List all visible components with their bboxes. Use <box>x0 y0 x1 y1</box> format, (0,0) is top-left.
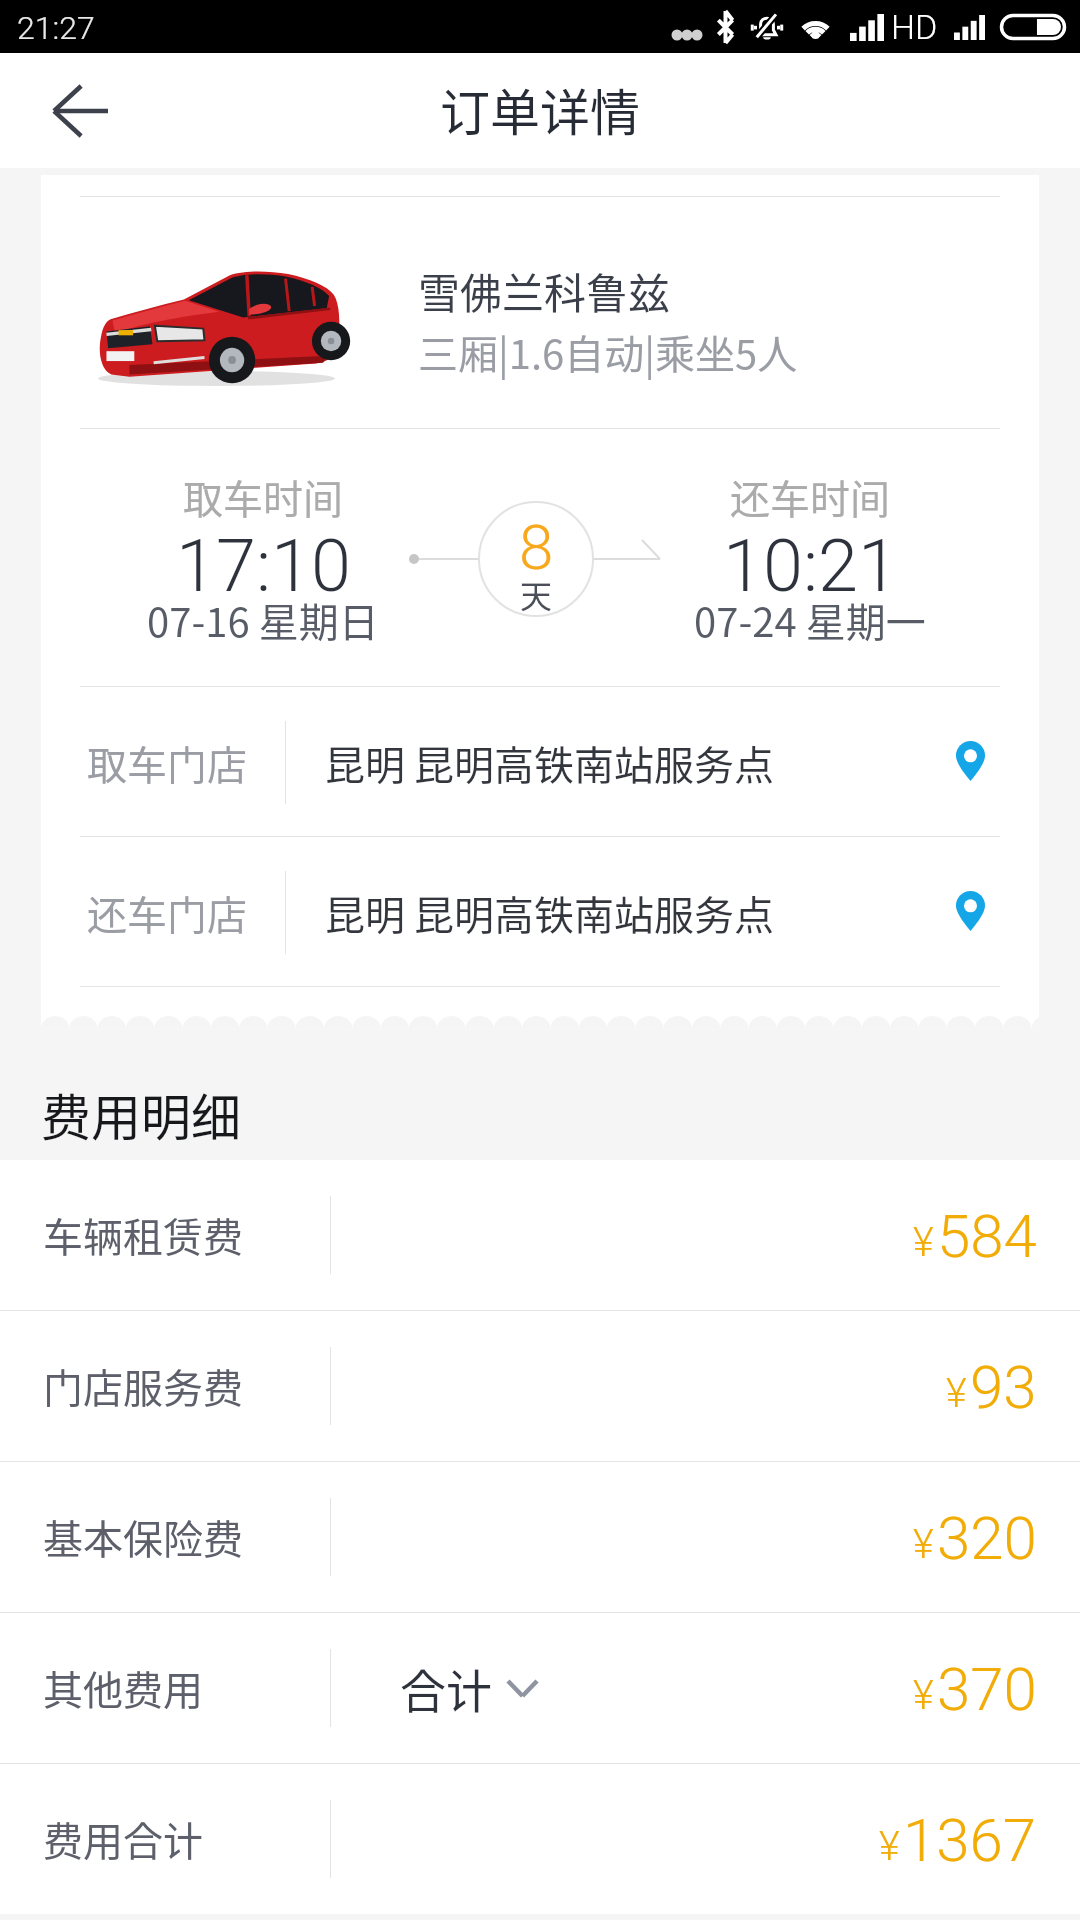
staticText: ¥ <box>946 1370 967 1417</box>
staticText: 订单详情 <box>440 73 640 145</box>
button[interactable]: Map location <box>930 871 1010 951</box>
staticText: 320 <box>937 1503 1037 1573</box>
staticText: 07-24 星期一 <box>694 591 926 649</box>
button[interactable]: 车辆租赁费 <box>0 1160 1080 1310</box>
staticText: 取车门店 <box>87 734 247 792</box>
button[interactable]: 门店服务费 <box>0 1311 1080 1461</box>
staticText: 雪佛兰科鲁兹 <box>418 260 671 321</box>
staticText: 合计 <box>400 1655 492 1722</box>
staticText: 还车时间 <box>730 468 890 526</box>
staticText: 费用明细 <box>41 1078 241 1150</box>
staticText: 还车门店 <box>87 884 247 942</box>
staticText: 21:27 <box>17 9 95 47</box>
staticText: ¥ <box>913 1672 934 1719</box>
button[interactable]: Map location <box>930 721 1010 801</box>
staticText: 17:10 <box>176 524 351 608</box>
button[interactable]: 取车门店 <box>41 686 1039 836</box>
button[interactable]: 还车门店 <box>41 836 1039 986</box>
staticText: 370 <box>937 1654 1037 1724</box>
button[interactable]: 基本保险费 <box>0 1462 1080 1612</box>
staticText: ¥ <box>879 1823 900 1870</box>
staticText: 车辆租赁费 <box>43 1206 243 1264</box>
staticText: ¥ <box>913 1219 934 1266</box>
staticText: 取车时间 <box>183 468 343 526</box>
staticText: 07-16 星期日 <box>147 591 379 649</box>
staticText: 1367 <box>903 1805 1037 1875</box>
staticText: ¥ <box>913 1521 934 1568</box>
staticText: 8 <box>519 511 554 584</box>
staticText: 10:21 <box>723 524 898 608</box>
staticText: 天 <box>520 571 553 617</box>
staticText: HD <box>891 7 938 47</box>
staticText: 三厢|1.6自动|乘坐5人 <box>418 323 798 381</box>
staticText: 93 <box>970 1352 1037 1422</box>
button[interactable]: 费用合计 <box>0 1764 1080 1914</box>
button[interactable]: Back <box>26 57 134 165</box>
button[interactable]: 其他费用 <box>0 1613 1080 1763</box>
staticText: 其他费用 <box>43 1659 203 1717</box>
staticText: 584 <box>937 1201 1037 1271</box>
staticText: 门店服务费 <box>43 1357 243 1415</box>
staticText: 基本保险费 <box>43 1508 243 1566</box>
staticText: 昆明 昆明高铁南站服务点 <box>325 884 774 942</box>
staticText: 昆明 昆明高铁南站服务点 <box>325 734 774 792</box>
staticText: 费用合计 <box>43 1810 203 1868</box>
